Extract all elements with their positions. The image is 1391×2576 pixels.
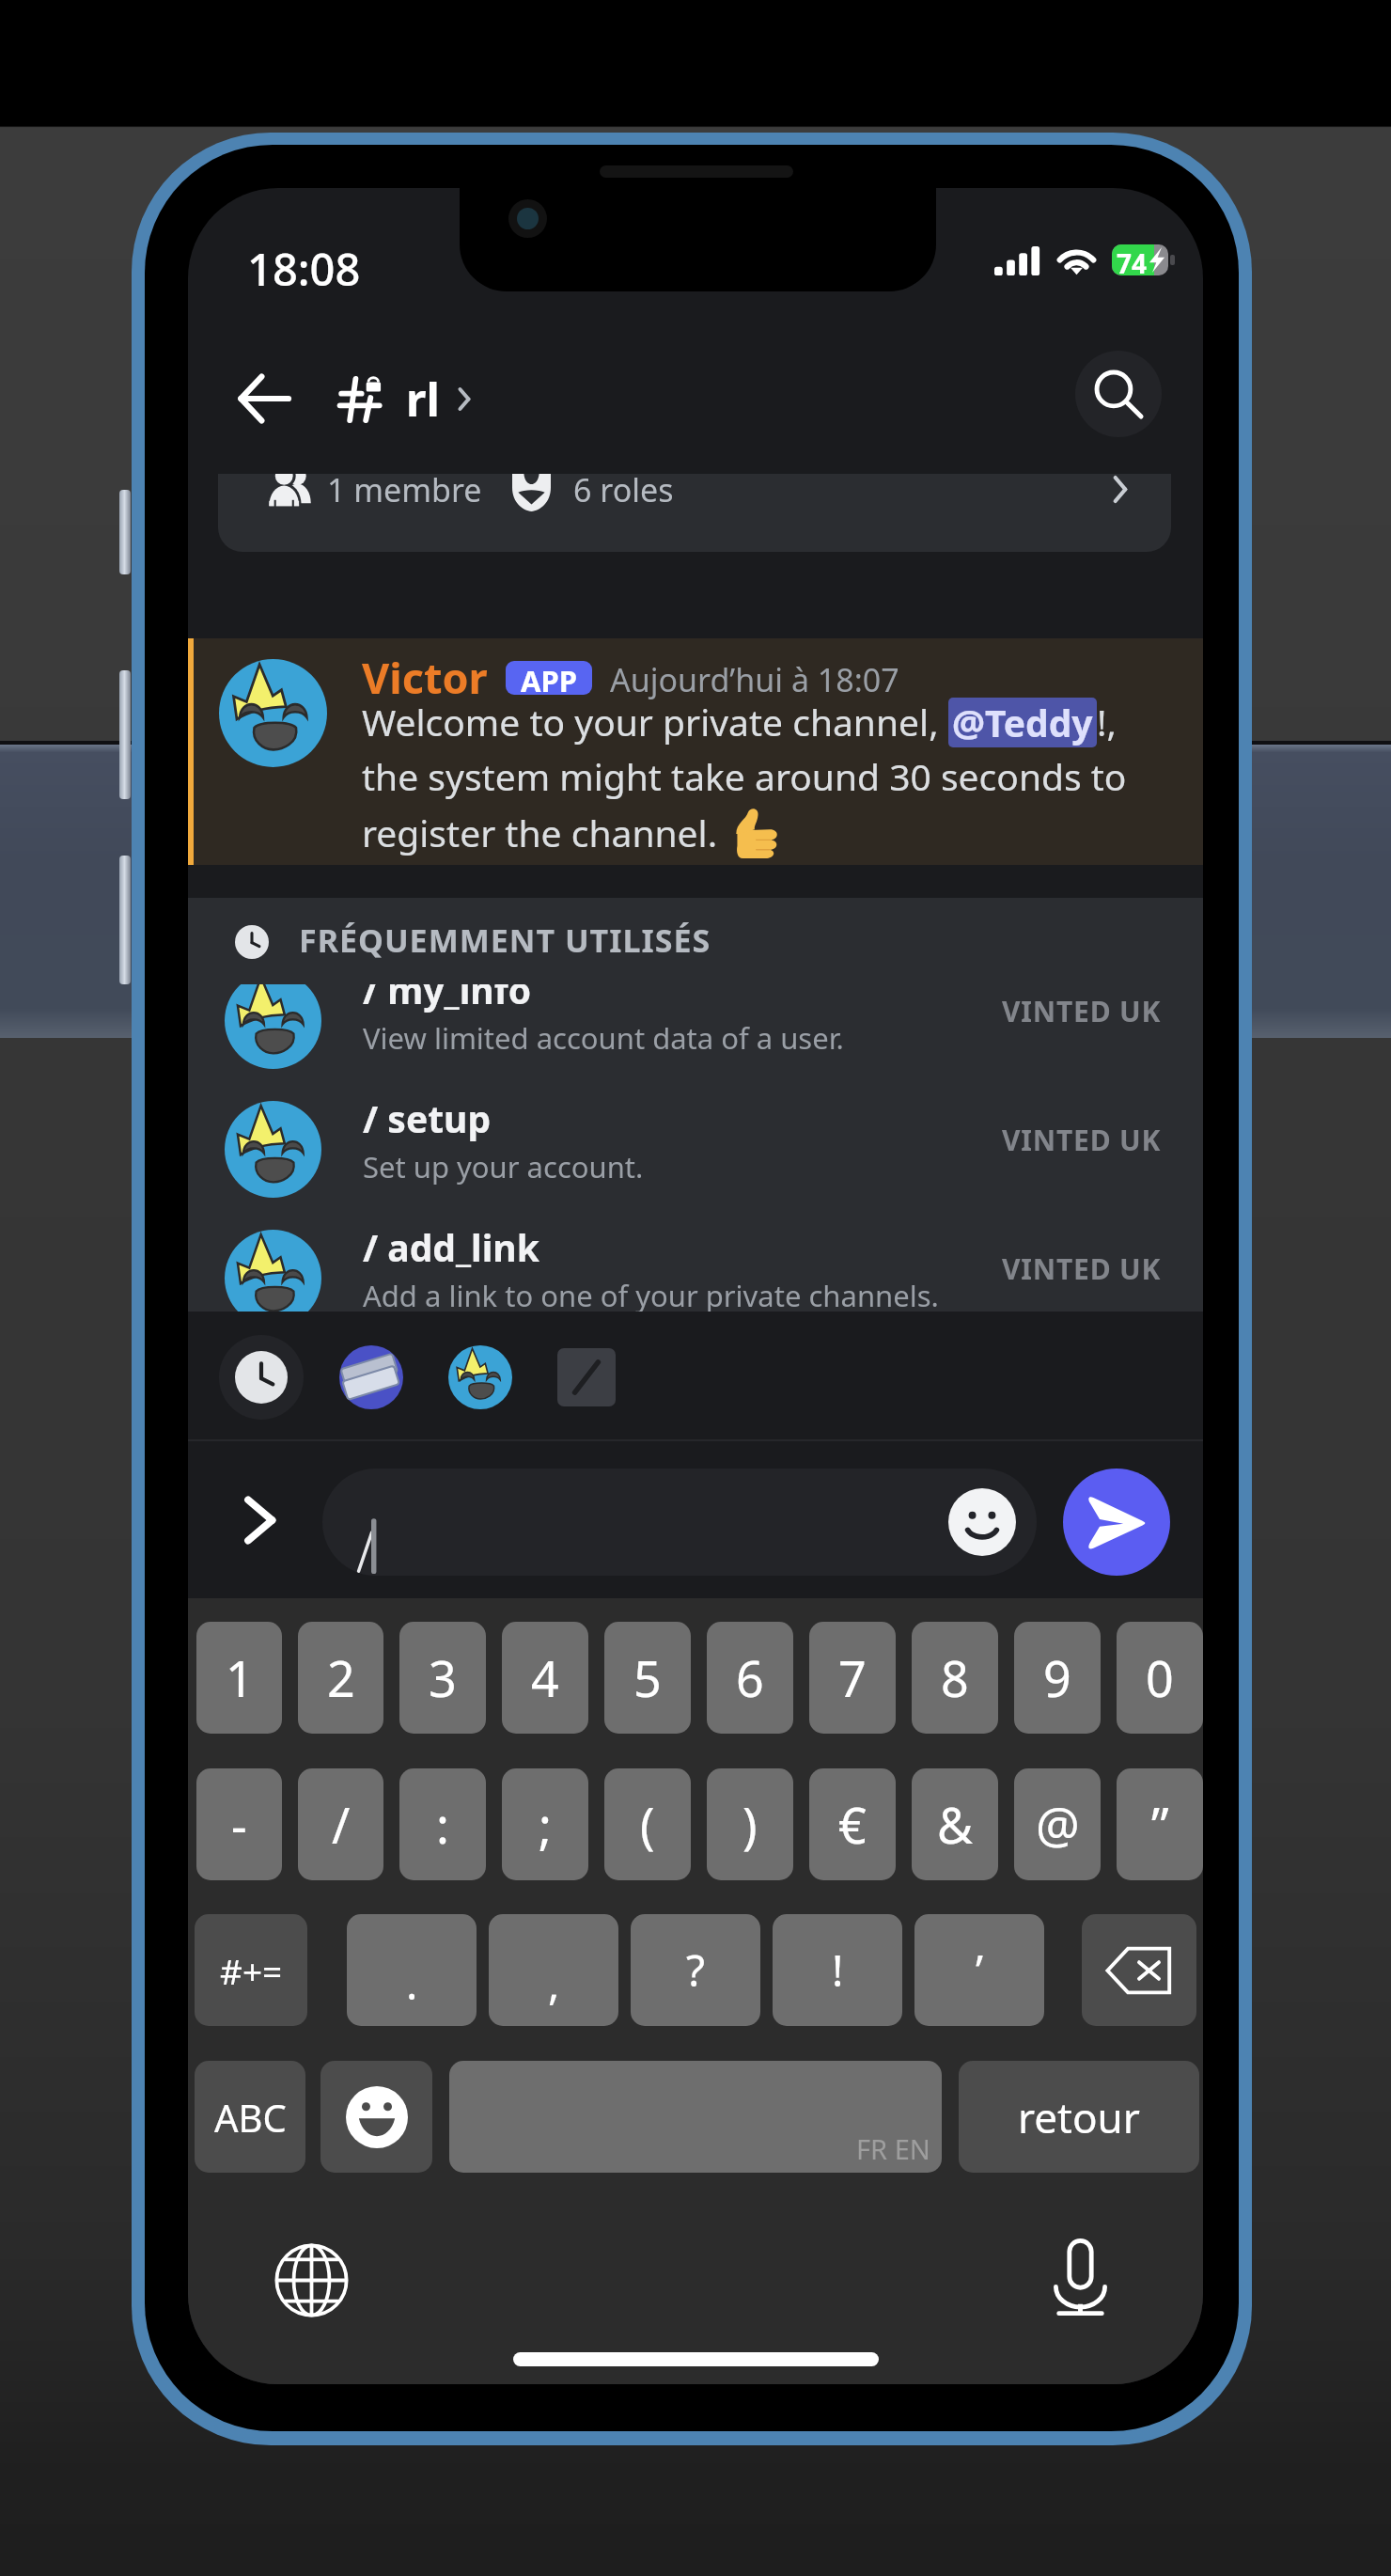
button[interactable]: , — [489, 1914, 618, 2026]
staticText: - — [231, 1791, 247, 1858]
staticText: 1 — [226, 1644, 254, 1711]
staticText: : — [436, 1791, 449, 1858]
staticText: 5 — [633, 1644, 662, 1711]
staticText: 1 membre — [327, 474, 482, 511]
button[interactable]: € — [809, 1768, 896, 1880]
button[interactable]: ) — [707, 1768, 793, 1880]
button[interactable]: 3 — [399, 1622, 486, 1734]
button[interactable]: / setup — [188, 1093, 1203, 1222]
staticText: rl — [406, 369, 440, 430]
button[interactable]: 1 membre — [218, 474, 1171, 552]
button[interactable]: 4 — [502, 1622, 588, 1734]
button[interactable]: #+= — [195, 1914, 307, 2026]
staticText: 3 — [429, 1644, 457, 1711]
staticText: 9 — [1043, 1644, 1071, 1711]
button[interactable]: & — [912, 1768, 998, 1880]
button[interactable]: Server emoji — [448, 1345, 512, 1409]
staticText: ! — [832, 1940, 844, 2000]
button[interactable]: 9 — [1014, 1622, 1101, 1734]
staticText: Victor — [362, 649, 488, 706]
button[interactable]: ! — [773, 1914, 902, 2026]
staticText: € — [838, 1791, 867, 1858]
button[interactable]: Send message — [1063, 1469, 1170, 1576]
button[interactable]: FR EN — [449, 2061, 942, 2173]
button[interactable]: Switch keyboard language — [274, 2243, 349, 2317]
staticText: 8 — [941, 1644, 969, 1711]
staticText: 4 — [531, 1644, 559, 1711]
button[interactable]: ABC — [195, 2061, 305, 2173]
button[interactable]: 7 — [809, 1622, 896, 1734]
staticText: Aujourd’hui à 18:07 — [610, 658, 899, 701]
button[interactable]: 8 — [912, 1622, 998, 1734]
staticText: FRÉQUEMMENT UTILISÉS — [299, 919, 711, 962]
button[interactable]: ? — [631, 1914, 760, 2026]
button[interactable] — [1082, 1914, 1196, 2026]
button[interactable]: 2 — [298, 1622, 383, 1734]
staticText: Add a link to one of your private channe… — [363, 1276, 939, 1315]
button[interactable] — [320, 2061, 432, 2173]
staticText: & — [937, 1791, 974, 1858]
button[interactable]: Slash commands — [557, 1348, 616, 1406]
staticText: / my_info — [363, 984, 532, 1014]
staticText: 0 — [1146, 1644, 1174, 1711]
button[interactable]: - — [196, 1768, 282, 1880]
staticText: / setup — [363, 1093, 492, 1143]
button[interactable]: Search — [1075, 351, 1162, 437]
button[interactable]: / add_link — [188, 1222, 1203, 1315]
staticText: ” — [1151, 1791, 1169, 1858]
staticText: the system might take around 30 seconds … — [362, 751, 1127, 801]
button[interactable]: / my_info — [188, 984, 1203, 1093]
staticText: ( — [640, 1791, 655, 1858]
button[interactable]: ( — [604, 1768, 691, 1880]
staticText: 74 — [1117, 245, 1148, 281]
button[interactable]: 0 — [1117, 1622, 1203, 1734]
button[interactable]: 6 — [707, 1622, 793, 1734]
staticText: ; — [539, 1791, 552, 1858]
staticText: !, — [1097, 697, 1117, 746]
button[interactable]: Tickets — [339, 1345, 403, 1409]
button[interactable]: Recently used — [219, 1335, 304, 1420]
staticText: / add_link — [363, 1222, 539, 1272]
staticText: register the channel. — [362, 808, 727, 857]
staticText: @ — [1036, 1791, 1080, 1858]
button[interactable]: / — [298, 1768, 383, 1880]
staticText: APP — [521, 661, 577, 695]
staticText: 7 — [838, 1644, 867, 1711]
staticText: ) — [742, 1791, 758, 1858]
staticText: FR EN — [856, 2130, 930, 2167]
button[interactable]: Emoji picker — [948, 1488, 1016, 1556]
button[interactable]: ’ — [914, 1914, 1044, 2026]
staticText: ’ — [976, 1940, 984, 2000]
button[interactable]: 5 — [604, 1622, 691, 1734]
staticText: Welcome to your private channel, — [362, 697, 948, 746]
staticText: 6 roles — [573, 474, 674, 511]
staticText: VINTED UK — [1002, 1249, 1162, 1288]
button[interactable]: @ — [1014, 1768, 1101, 1880]
staticText: 6 — [736, 1644, 764, 1711]
button[interactable]: retour — [959, 2061, 1199, 2173]
button[interactable]: Dictation — [1054, 2238, 1107, 2317]
staticText: / — [332, 1791, 351, 1858]
staticText: . — [406, 1954, 418, 2013]
button[interactable]: : — [399, 1768, 486, 1880]
staticText: , — [548, 1954, 560, 2013]
staticText: ? — [686, 1940, 705, 2000]
staticText: VINTED UK — [1002, 1121, 1162, 1159]
staticText: View limited account data of a user. — [363, 1018, 844, 1058]
button[interactable]: . — [347, 1914, 477, 2026]
staticText: #+= — [220, 1947, 283, 1994]
button[interactable]: ” — [1117, 1768, 1203, 1880]
button[interactable]: 1 — [196, 1622, 282, 1734]
button[interactable]: Open commands — [218, 1479, 301, 1562]
button[interactable]: Back — [218, 353, 308, 444]
button[interactable]: rl — [338, 357, 470, 440]
staticText: 2 — [327, 1644, 355, 1711]
button[interactable]: Emoji picker — [322, 1469, 1037, 1576]
staticText: retour — [1018, 2089, 1140, 2145]
staticText: VINTED UK — [1002, 992, 1162, 1030]
button[interactable]: ; — [502, 1768, 588, 1880]
staticText: Set up your account. — [363, 1147, 644, 1186]
staticText: 18:08 — [247, 239, 361, 299]
staticText: @Teddy — [952, 698, 1093, 747]
staticText: ABC — [214, 2092, 287, 2143]
